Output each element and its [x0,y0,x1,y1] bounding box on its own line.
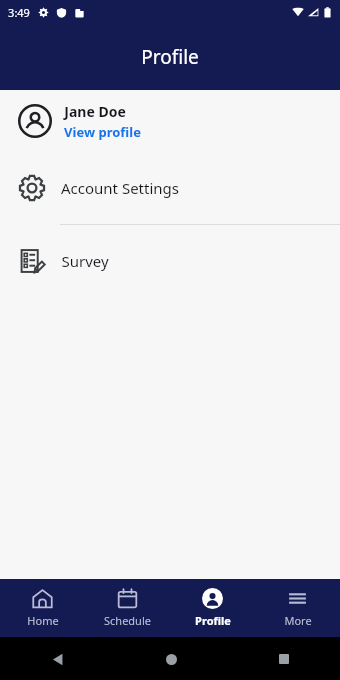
button[interactable]: Schedule [85,582,170,634]
staticText: Home [27,613,59,628]
staticText: Schedule [104,613,151,628]
button[interactable]: Home [154,642,188,676]
staticText: View profile [64,123,141,141]
button[interactable]: Profile [170,582,255,634]
staticText: Profile [195,613,231,628]
staticText: Jane Doe [64,102,126,121]
staticText: More [284,613,312,628]
staticText: Survey [61,251,109,271]
button[interactable]: Account Settings [0,152,340,224]
button[interactable]: More [255,582,340,634]
button[interactable]: Home [0,582,85,634]
staticText: 3:49 [8,5,30,20]
staticText: Account Settings [61,178,179,198]
button[interactable]: Recent apps [267,642,301,676]
button[interactable]: Back [40,642,74,676]
staticText: Profile [141,44,199,70]
button[interactable]: Jane Doe [0,90,340,152]
button[interactable]: Survey [0,225,340,297]
